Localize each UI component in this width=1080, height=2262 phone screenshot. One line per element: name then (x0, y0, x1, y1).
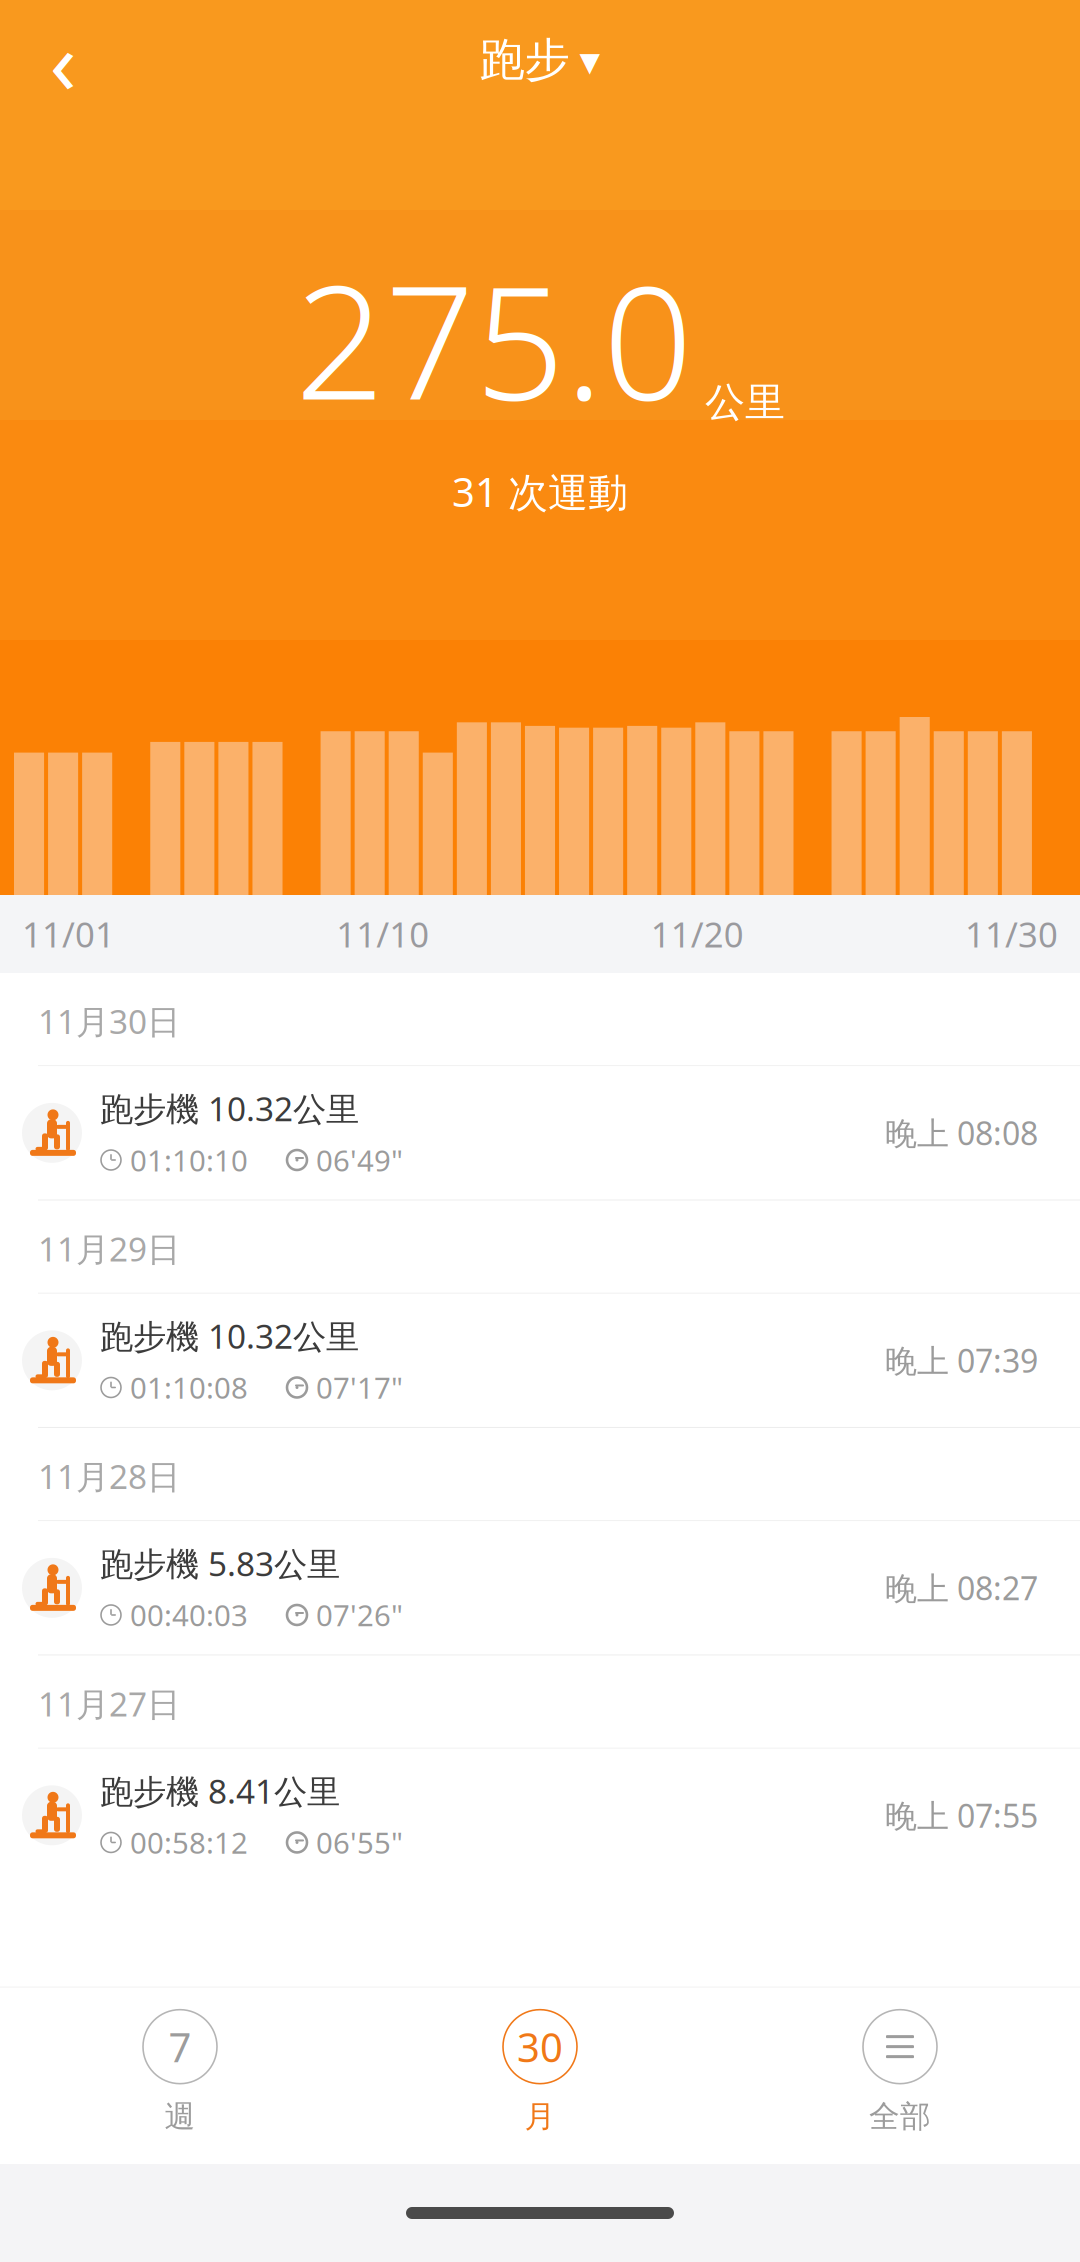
staticText: 跑步機 10.32公里 (100, 1314, 359, 1358)
staticText: 跑步機 8.41公里 (100, 1769, 340, 1813)
staticText: 01:10:08 (130, 1368, 248, 1407)
staticText: 晚上 07:55 (885, 1794, 1038, 1837)
button[interactable]: 跑步 (469, 24, 610, 96)
staticText: 07'17" (316, 1368, 403, 1407)
staticText: 11月27日 (38, 1681, 180, 1726)
button[interactable]: 跑步機 5.83公里 (0, 1521, 1080, 1654)
staticText: 11/30 (965, 911, 1058, 957)
button[interactable]: 跑步機 10.32公里 (0, 1294, 1080, 1427)
staticText: 11月28日 (38, 1454, 180, 1498)
staticText: 11/10 (336, 911, 429, 957)
staticText: 跑步 (479, 32, 569, 88)
staticText: 00:58:12 (130, 1823, 248, 1862)
staticText: 晚上 08:08 (885, 1112, 1038, 1154)
staticText: 7 (168, 2020, 191, 2073)
staticText: 跑步機 5.83公里 (100, 1541, 340, 1585)
staticText: 晚上 07:39 (885, 1339, 1038, 1382)
staticText: 00:40:03 (130, 1595, 248, 1634)
staticText: 11月30日 (38, 999, 180, 1043)
staticText: 11月29日 (38, 1226, 180, 1271)
staticText: 跑步機 10.32公里 (100, 1086, 359, 1131)
staticText: 01:10:10 (130, 1140, 248, 1179)
staticText: 公里 (705, 378, 785, 427)
button[interactable]: 月 (360, 1994, 720, 2151)
staticText: 275.0 (295, 234, 693, 443)
staticText: 07'26" (316, 1595, 403, 1634)
staticText: 11/20 (651, 911, 744, 957)
staticText: 06'49" (316, 1140, 403, 1179)
staticText: ▼ (579, 47, 600, 77)
button[interactable]: 跑步機 8.41公里 (0, 1749, 1080, 1882)
staticText: 晚上 08:27 (885, 1567, 1038, 1609)
button[interactable]: 全部 (720, 1994, 1080, 2151)
button[interactable]: Back (20, 17, 106, 103)
button[interactable]: 週 (0, 1994, 360, 2151)
staticText: 週 (164, 2098, 195, 2135)
staticText: 全部 (869, 2098, 931, 2135)
button[interactable]: 跑步機 10.32公里 (0, 1066, 1080, 1199)
staticText: 30 (517, 2020, 563, 2073)
staticText: ‹ (49, 2, 76, 118)
staticText: 11/01 (22, 911, 115, 957)
staticText: 06'55" (316, 1823, 403, 1862)
staticText: 31 次運動 (452, 465, 628, 518)
staticText: 月 (524, 2098, 555, 2135)
